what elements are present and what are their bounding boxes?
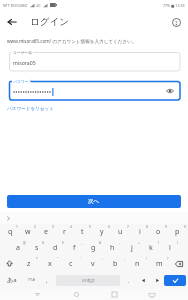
staticText: q xyxy=(8,227,13,237)
button[interactable]: Back xyxy=(30,289,44,300)
button[interactable]: More suggestions xyxy=(4,214,13,223)
button[interactable]: i xyxy=(130,225,149,238)
staticText: ? xyxy=(167,257,169,261)
staticText: ! xyxy=(146,257,147,261)
button[interactable]: e xyxy=(37,225,55,238)
staticText: _ xyxy=(81,241,83,245)
button[interactable]: x xyxy=(39,257,60,270)
staticText: ' xyxy=(80,257,81,261)
staticText: 0 xyxy=(184,225,186,229)
staticText: ログイン xyxy=(30,16,69,28)
button[interactable]: f xyxy=(65,241,84,254)
button[interactable]: 次へ xyxy=(7,195,181,208)
button[interactable]: v xyxy=(82,257,104,270)
staticText: & xyxy=(99,241,102,245)
staticText: 9 xyxy=(165,225,167,229)
staticText: www.misora65.com/ のアカウント情報を入力してください。 xyxy=(7,38,137,44)
staticText: x xyxy=(48,259,52,269)
staticText: # xyxy=(42,241,45,245)
staticText: g xyxy=(91,243,96,253)
staticText: t xyxy=(81,227,84,237)
button[interactable]: m xyxy=(148,257,170,270)
staticText: 2 xyxy=(34,225,36,229)
button[interactable]: g xyxy=(84,241,103,254)
button[interactable]: Switch language xyxy=(2,273,22,287)
button[interactable]: b xyxy=(104,257,126,270)
button[interactable]: q xyxy=(1,225,19,238)
staticText: 4G xyxy=(36,3,41,8)
staticText: z xyxy=(27,259,31,269)
button[interactable]: k xyxy=(141,241,160,254)
button[interactable]: o xyxy=(149,225,168,238)
staticText: y xyxy=(100,227,104,237)
staticText: k xyxy=(149,243,153,253)
staticText: 日本語 xyxy=(82,278,95,283)
staticText: - xyxy=(119,241,121,245)
button[interactable]: Symbols xyxy=(22,273,40,287)
staticText: w xyxy=(25,227,31,237)
staticText: : xyxy=(102,257,103,261)
staticText: ?1# xyxy=(28,277,35,283)
button[interactable]: Hide keyboard xyxy=(145,289,159,300)
staticText: " xyxy=(57,257,59,261)
button[interactable]: h xyxy=(103,241,122,254)
staticText: 8 xyxy=(146,225,148,229)
staticText: r xyxy=(63,227,66,237)
button[interactable]: c xyxy=(60,257,82,270)
button[interactable]: Recent apps xyxy=(107,289,121,300)
staticText: i xyxy=(139,227,141,237)
button[interactable]: r xyxy=(55,225,73,238)
staticText: パスワードをリセット xyxy=(7,106,54,112)
staticText: 77% ■ 12:33 xyxy=(163,3,185,8)
button[interactable]: Move cursor left xyxy=(136,273,150,287)
staticText: 5 xyxy=(89,225,91,229)
button[interactable]: w xyxy=(19,225,37,238)
button[interactable]: Shift xyxy=(0,257,18,270)
button[interactable]: Show password xyxy=(164,85,176,97)
button[interactable]: p xyxy=(168,225,187,238)
staticText: v xyxy=(91,259,95,269)
staticText: e xyxy=(44,227,48,237)
staticText: ; xyxy=(124,257,125,261)
button[interactable]: n xyxy=(126,257,148,270)
button[interactable]: . xyxy=(122,273,136,287)
button[interactable]: Back xyxy=(0,10,24,34)
staticText: @ xyxy=(23,241,26,245)
button[interactable]: Confirm xyxy=(164,275,186,286)
button[interactable]: l xyxy=(160,241,179,254)
button[interactable]: Help xyxy=(164,10,188,34)
staticText: l xyxy=(169,243,171,253)
button[interactable]: u xyxy=(111,225,130,238)
staticText: NTT DOCOMO xyxy=(3,3,28,8)
button[interactable]: s xyxy=(27,241,46,254)
staticText: misora05 xyxy=(13,59,36,66)
staticText: j xyxy=(131,243,133,253)
button[interactable]: Home xyxy=(69,289,83,300)
button[interactable]: z xyxy=(18,257,39,270)
button[interactable]: , xyxy=(40,273,54,287)
staticText: $ xyxy=(62,241,64,245)
button[interactable]: j xyxy=(122,241,141,254)
button[interactable]: d xyxy=(46,241,65,254)
button[interactable]: Move cursor right xyxy=(150,273,164,287)
staticText: あa xyxy=(7,276,17,284)
staticText: 次へ xyxy=(88,198,100,205)
button[interactable]: 日本語 xyxy=(56,275,120,286)
staticText: a xyxy=(16,243,20,253)
button[interactable]: Backspace xyxy=(170,257,188,270)
staticText: * xyxy=(36,257,38,261)
button[interactable]: a xyxy=(9,241,27,254)
staticText: 7 xyxy=(127,225,129,229)
staticText: n xyxy=(135,259,140,269)
staticText: m xyxy=(156,259,163,269)
staticText: ) xyxy=(177,241,178,245)
button[interactable]: t xyxy=(73,225,92,238)
staticText: , xyxy=(46,277,48,284)
staticText: 1 xyxy=(16,225,18,229)
staticText: s xyxy=(35,243,39,253)
staticText: h xyxy=(110,243,115,253)
button[interactable]: パスワードをリセット xyxy=(7,105,54,113)
button[interactable]: y xyxy=(92,225,111,238)
staticText: d xyxy=(53,243,58,253)
staticText: 3 xyxy=(52,225,54,229)
